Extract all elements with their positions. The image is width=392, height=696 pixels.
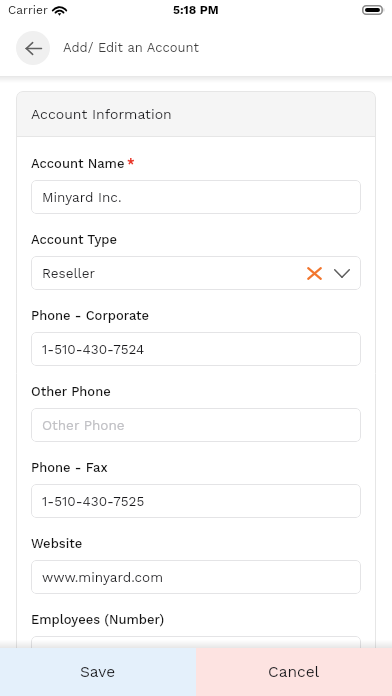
staticText: 1-510-430-7525 xyxy=(42,493,145,509)
staticText: 5:18 PM xyxy=(173,3,219,17)
button[interactable]: 1-510-430-7525 xyxy=(31,484,361,518)
staticText: www.minyard.com xyxy=(42,569,164,585)
staticText: Website xyxy=(31,536,83,551)
button[interactable]: Minyard Inc. xyxy=(31,180,361,214)
staticText: Employees (Number) xyxy=(31,612,165,627)
staticText: Phone - Corporate xyxy=(31,308,150,323)
staticText: Reseller xyxy=(42,265,96,281)
staticText: Save xyxy=(80,663,116,681)
staticText: Other Phone xyxy=(31,384,111,399)
staticText: Cancel xyxy=(268,663,320,681)
staticText: 1-510-430-7524 xyxy=(42,341,145,357)
staticText: Minyard Inc. xyxy=(42,189,122,205)
staticText: Add/ Edit an Account xyxy=(63,40,199,55)
staticText: Account Type xyxy=(31,232,117,247)
button[interactable]: Reseller xyxy=(31,256,361,290)
staticText: Carrier xyxy=(8,3,48,17)
button[interactable]: 1-510-430-7524 xyxy=(31,332,361,366)
button[interactable]: Cancel xyxy=(196,648,392,696)
staticText: Account Name xyxy=(31,156,125,171)
button[interactable]: 100 xyxy=(31,636,361,648)
button[interactable]: Back xyxy=(16,31,50,65)
staticText: Other Phone xyxy=(42,417,125,433)
button[interactable]: www.minyard.com xyxy=(31,560,361,594)
staticText: * xyxy=(127,156,135,171)
staticText: Phone - Fax xyxy=(31,460,108,475)
button[interactable]: Other Phone xyxy=(31,408,361,442)
button[interactable]: Save xyxy=(0,648,196,696)
staticText: Account Information xyxy=(31,106,172,122)
